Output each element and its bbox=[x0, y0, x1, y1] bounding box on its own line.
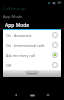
staticText: On - International calls bbox=[6, 43, 52, 48]
staticText: App Mode bbox=[5, 22, 30, 29]
staticText: Cancel bbox=[27, 72, 37, 76]
button[interactable]: Recents bbox=[40, 90, 56, 100]
button[interactable]: Off bbox=[3, 60, 61, 70]
staticText: App Mode bbox=[3, 14, 23, 19]
button[interactable]: Back bbox=[8, 90, 24, 100]
staticText: Ask me every call bbox=[6, 53, 52, 58]
button[interactable]: On - Automatic bbox=[3, 30, 61, 40]
staticText: Call Settings bbox=[3, 6, 27, 11]
button[interactable]: On - International calls bbox=[3, 40, 61, 50]
button[interactable]: Cancel bbox=[25, 71, 39, 76]
staticText: On - Automatic bbox=[6, 33, 52, 38]
button[interactable]: Home bbox=[24, 90, 40, 100]
staticText: Off bbox=[6, 63, 52, 68]
button[interactable]: Ask me every call bbox=[3, 50, 61, 60]
